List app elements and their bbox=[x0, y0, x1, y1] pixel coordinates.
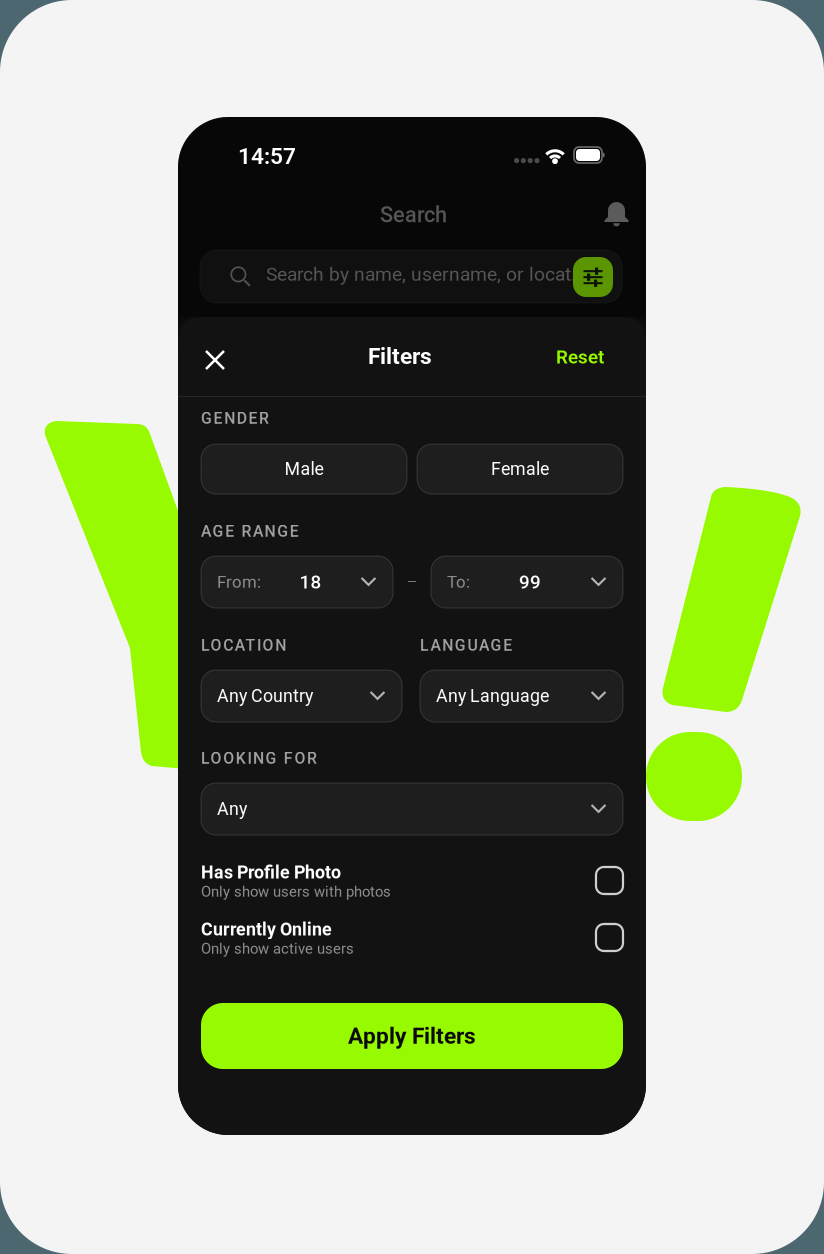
staticText: Search by name, username, or locat... bbox=[266, 263, 586, 285]
staticText: LOOKING FOR bbox=[201, 749, 317, 767]
staticText: To: bbox=[447, 572, 470, 592]
staticText: LOCATION bbox=[201, 636, 286, 654]
staticText: 18 bbox=[299, 571, 321, 593]
button[interactable]: Any bbox=[201, 783, 623, 835]
staticText: Only show active users bbox=[201, 940, 354, 957]
staticText: Filters bbox=[368, 343, 432, 370]
button[interactable]: Currently Online bbox=[201, 919, 623, 961]
button[interactable]: Female bbox=[417, 444, 623, 494]
staticText: Male bbox=[284, 459, 323, 479]
button[interactable]: Filter options bbox=[573, 257, 613, 297]
button[interactable]: Close bbox=[205, 350, 225, 370]
staticText: 99 bbox=[519, 571, 541, 593]
staticText: Female bbox=[491, 459, 549, 479]
button[interactable]: Reset bbox=[556, 346, 604, 368]
staticText: Any bbox=[217, 799, 247, 819]
button[interactable]: Any Country bbox=[201, 670, 402, 722]
staticText: Currently Online bbox=[201, 919, 332, 940]
staticText: Has Profile Photo bbox=[201, 862, 341, 883]
button[interactable]: Notifications bbox=[601, 197, 632, 232]
staticText: Any Country bbox=[217, 686, 313, 706]
staticText: Any Language bbox=[436, 686, 549, 706]
button[interactable]: To: bbox=[431, 556, 623, 608]
button[interactable]: Male bbox=[201, 444, 407, 494]
staticText: 14:57 bbox=[238, 143, 296, 170]
staticText: LANGUAGE bbox=[420, 636, 512, 654]
staticText: Apply Filters bbox=[348, 1023, 476, 1049]
button[interactable]: Any Language bbox=[420, 670, 623, 722]
staticText: Search bbox=[380, 202, 447, 227]
staticText: – bbox=[406, 572, 417, 592]
button[interactable]: From: bbox=[201, 556, 393, 608]
staticText: From: bbox=[217, 572, 261, 592]
staticText: GENDER bbox=[201, 409, 269, 427]
staticText: Only show users with photos bbox=[201, 883, 391, 900]
staticText: AGE RANGE bbox=[201, 522, 299, 540]
button[interactable]: Apply Filters bbox=[201, 1003, 623, 1069]
button[interactable]: Has Profile Photo bbox=[201, 862, 623, 904]
staticText: Reset bbox=[556, 346, 604, 368]
